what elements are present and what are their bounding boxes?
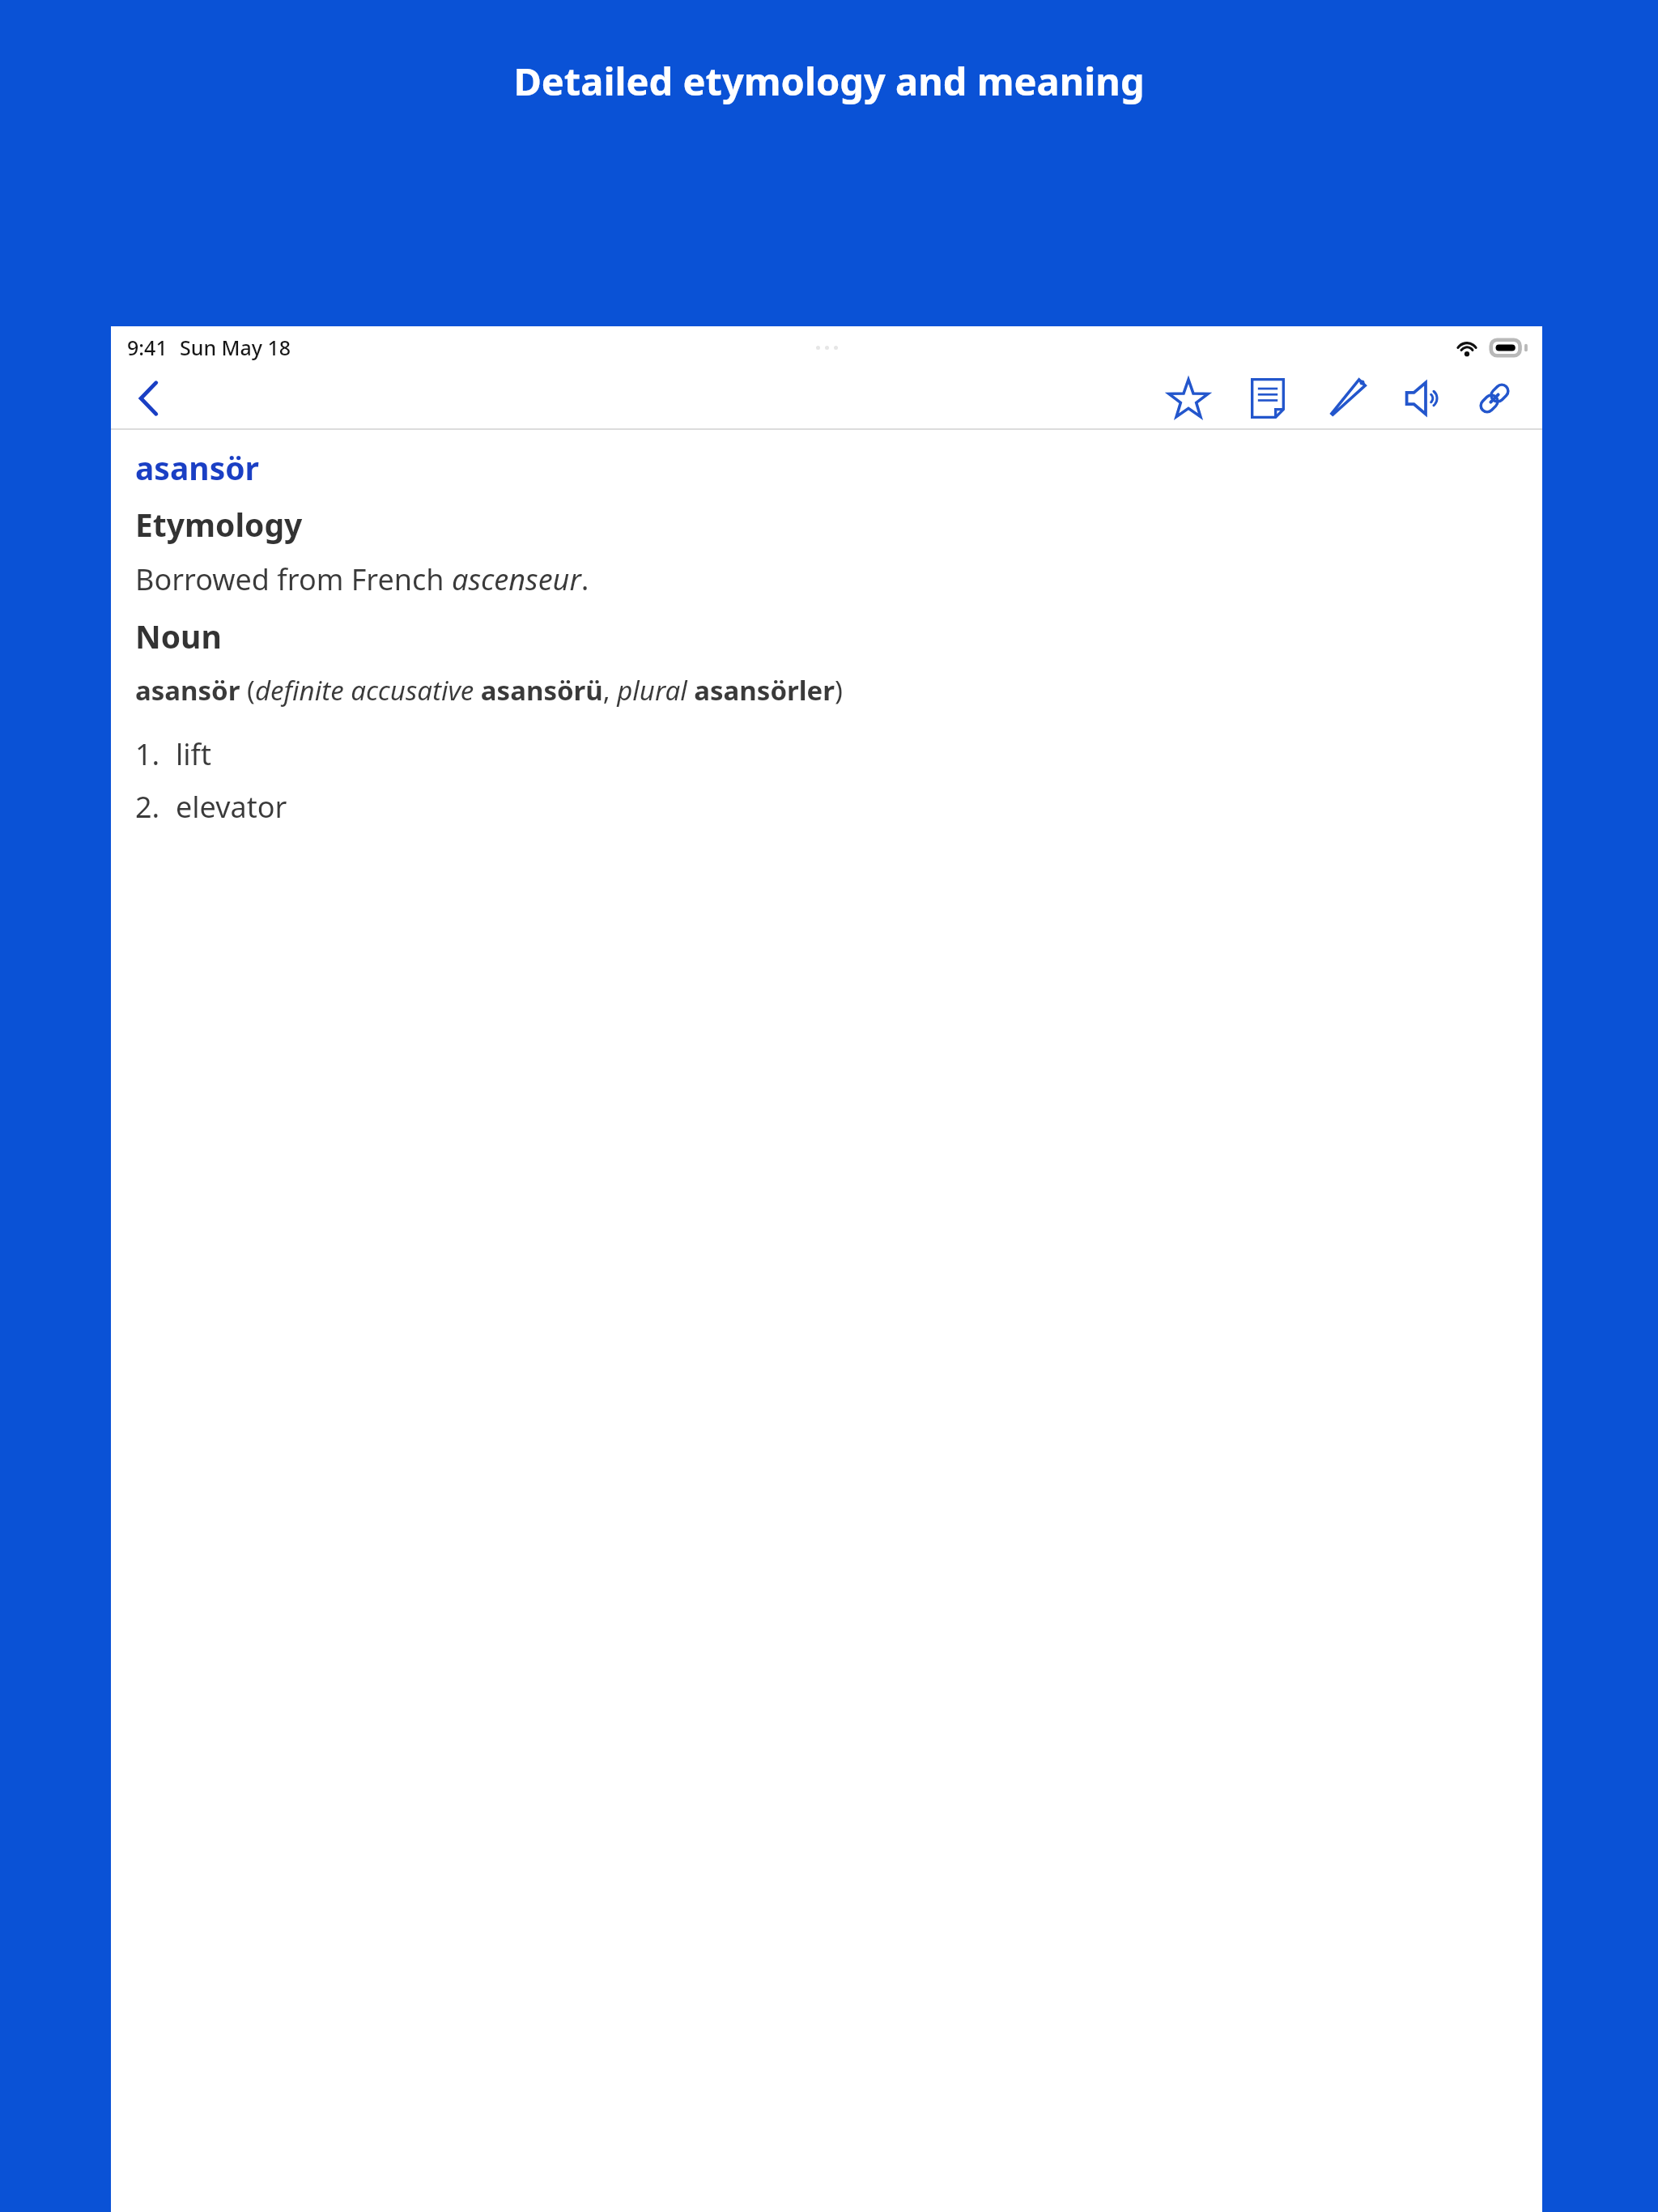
button[interactable]: Back <box>117 368 179 428</box>
staticText: asansör (definite accusative asansörü, p… <box>135 672 843 708</box>
button[interactable]: Edit <box>1307 368 1387 428</box>
button[interactable]: Add to favourites <box>1149 368 1228 428</box>
staticText: 1. <box>135 734 160 774</box>
staticText: Detailed etymology and meaning <box>513 55 1145 107</box>
staticText: Borrowed from French ascenseur. <box>135 559 589 599</box>
staticText: Noun <box>135 615 222 657</box>
staticText: Sun May 18 <box>180 334 291 361</box>
staticText: elevator <box>176 787 287 827</box>
staticText: 2. <box>135 787 160 827</box>
staticText: Etymology <box>135 503 303 546</box>
button[interactable]: Notes <box>1228 368 1307 428</box>
staticText: asansör <box>135 446 260 489</box>
button[interactable]: Pronounce <box>1387 368 1465 428</box>
staticText: lift <box>176 734 211 774</box>
button[interactable]: Copy link <box>1465 368 1524 428</box>
staticText: 9:41 <box>127 334 168 361</box>
